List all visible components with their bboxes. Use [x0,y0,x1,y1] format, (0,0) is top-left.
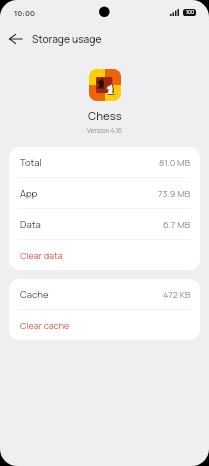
staticText: 73.9 MB [158,187,191,199]
staticText: 6.7 MB [163,218,191,230]
button[interactable]: App [9,178,200,208]
staticText: 10:00 [14,8,35,18]
button[interactable]: Clear data [9,240,200,270]
staticText: Cache [20,288,49,301]
staticText: App [20,187,38,200]
staticText: Data [20,218,41,231]
button[interactable]: Clear cache [9,310,200,340]
staticText: 81.0 MB [159,156,191,168]
staticText: 472 KB [163,288,191,300]
staticText: 100 [186,9,194,16]
button[interactable]: Cache [9,279,200,309]
staticText: Version 4.16 [87,126,123,135]
staticText: Clear cache [20,319,70,331]
staticText: Total [20,156,42,169]
staticText: Clear data [20,249,63,261]
staticText: Chess [88,108,122,123]
button[interactable]: Back [2,26,28,52]
staticText: Storage usage [32,32,102,46]
button[interactable]: Total [9,147,200,177]
button[interactable]: Data [9,209,200,239]
